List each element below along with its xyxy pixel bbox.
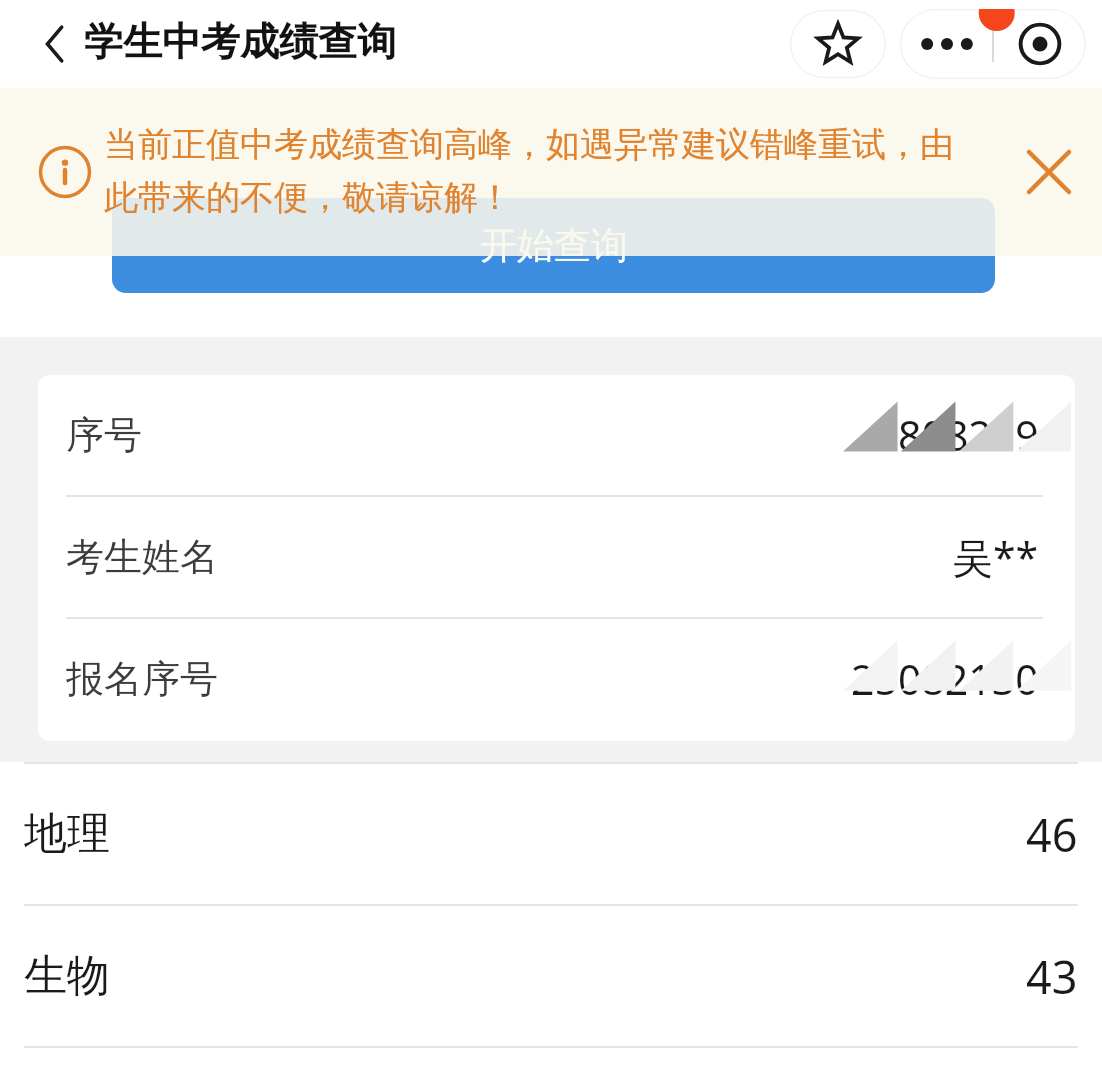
- staticText: 46: [1026, 804, 1078, 865]
- staticText: 地理: [24, 807, 110, 861]
- button[interactable]: Close mini program: [993, 9, 1086, 79]
- staticText: 808219: [898, 407, 1039, 463]
- button[interactable]: More: [900, 9, 993, 79]
- button[interactable]: 考生姓名: [38, 497, 1075, 617]
- button[interactable]: 报名序号: [38, 619, 1075, 739]
- button[interactable]: Dismiss: [1020, 143, 1078, 201]
- button[interactable]: Favorite: [790, 10, 886, 78]
- button[interactable]: 开始查询: [112, 198, 995, 293]
- button[interactable]: Back: [26, 15, 84, 73]
- staticText: 当前正值中考成绩查询高峰，如遇异常建议错峰重试，由此带来的不便，敬请谅解！: [104, 123, 984, 219]
- staticText: 序号: [66, 411, 142, 459]
- button[interactable]: 地理: [0, 764, 1102, 904]
- staticText: 报名序号: [66, 655, 218, 703]
- button[interactable]: 生物: [0, 906, 1102, 1046]
- staticText: 25082130: [851, 651, 1039, 707]
- staticText: 考生姓名: [66, 533, 218, 581]
- staticText: 43: [1026, 946, 1078, 1007]
- staticText: 吴**: [952, 529, 1039, 585]
- staticText: 开始查询: [480, 222, 628, 269]
- button[interactable]: 序号: [38, 375, 1075, 495]
- staticText: 学生中考成绩查询: [84, 17, 396, 66]
- other: Info: [39, 146, 91, 198]
- staticText: 生物: [24, 949, 110, 1003]
